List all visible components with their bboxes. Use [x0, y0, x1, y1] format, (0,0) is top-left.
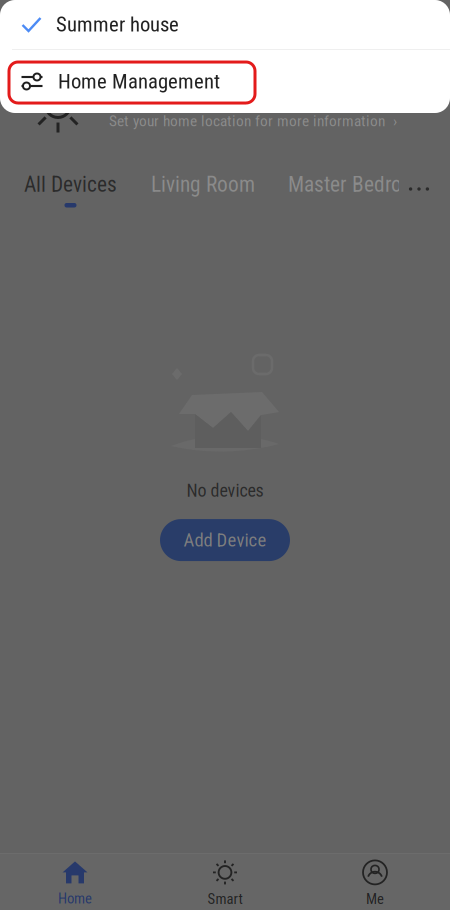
- button[interactable]: Smart: [150, 858, 300, 910]
- button[interactable]: More rooms: [402, 172, 436, 202]
- button[interactable]: Home: [0, 858, 150, 910]
- staticText: Home Management: [58, 69, 220, 94]
- staticText: Home: [58, 890, 92, 907]
- staticText: Add Device: [183, 529, 266, 551]
- staticText: Smart: [207, 890, 242, 908]
- button[interactable]: Me: [300, 858, 450, 910]
- staticText: No devices: [186, 480, 263, 501]
- staticText: Set your home location for more informat…: [109, 112, 397, 130]
- staticText: Me: [366, 890, 384, 908]
- staticText: Summer house: [56, 12, 179, 37]
- staticText: Living Room: [151, 172, 255, 197]
- button[interactable]: Add Device: [160, 519, 290, 561]
- staticText: All Devices: [24, 172, 117, 197]
- button[interactable]: Home Management: [0, 50, 450, 113]
- button[interactable]: Summer house: [0, 0, 450, 49]
- staticText: Master Bedroo: [288, 172, 413, 197]
